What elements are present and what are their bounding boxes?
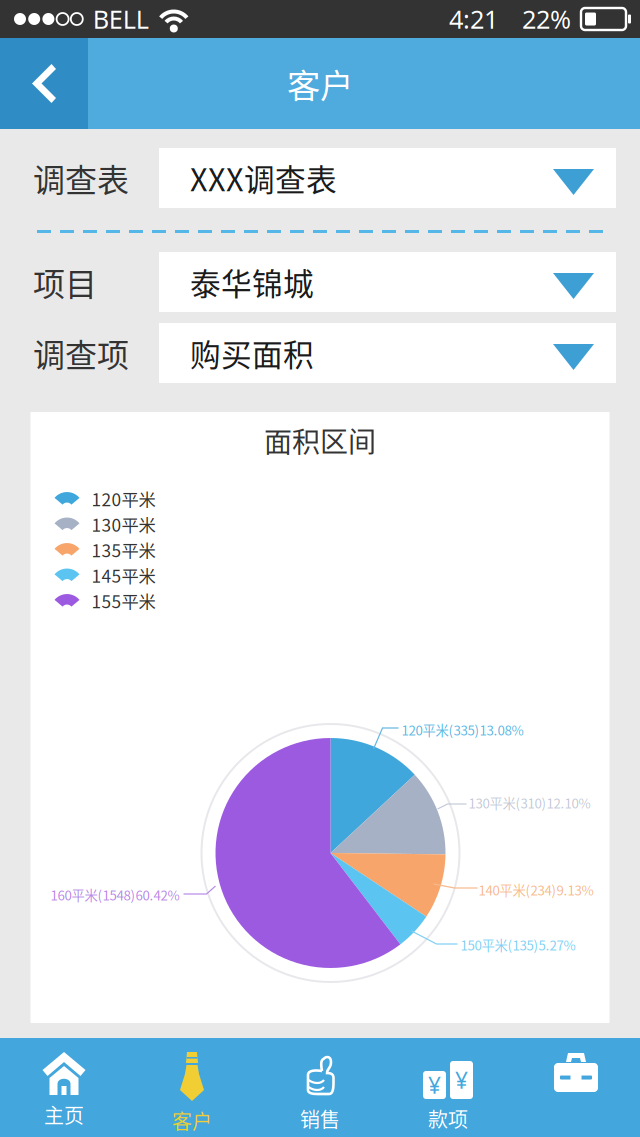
- staticText: 155平米: [91, 588, 155, 613]
- staticText: 客户: [172, 1106, 212, 1135]
- staticText: 销售: [300, 1104, 340, 1133]
- button[interactable]: XXX调查表: [159, 148, 616, 208]
- button[interactable]: 泰华锦城: [159, 252, 616, 312]
- staticText: 145平米: [91, 563, 155, 588]
- staticText: 140平米(234)9.13%: [478, 880, 593, 899]
- staticText: 130平米: [91, 512, 155, 537]
- button[interactable]: 购买面积: [159, 323, 616, 383]
- staticText: 泰华锦城: [190, 260, 314, 304]
- button[interactable]: 销售: [256, 1038, 384, 1137]
- button[interactable]: 主页: [0, 1038, 128, 1137]
- button[interactable]: 客户: [128, 1038, 256, 1137]
- staticText: 135平米: [91, 537, 155, 562]
- staticText: XXX调查表: [190, 156, 337, 200]
- staticText: 4:21: [449, 2, 498, 36]
- staticText: 调查项: [33, 330, 129, 376]
- staticText: 120平米(335)13.08%: [401, 720, 523, 739]
- staticText: 面积区间: [264, 420, 376, 460]
- staticText: 130平米(310)12.10%: [468, 793, 590, 812]
- staticText: 调查表: [33, 155, 129, 201]
- button[interactable]: 返回: [0, 38, 88, 129]
- staticText: 客户: [287, 59, 353, 108]
- staticText: BELL: [93, 2, 149, 36]
- staticText: 项目: [33, 259, 97, 305]
- staticText: 120平米: [91, 486, 155, 511]
- button[interactable]: [512, 1038, 640, 1137]
- staticText: 160平米(1548)60.42%: [50, 885, 179, 904]
- button[interactable]: ¥: [384, 1038, 512, 1137]
- staticText: 主页: [44, 1100, 84, 1129]
- staticText: 款项: [428, 1104, 468, 1133]
- staticText: ¥: [428, 1070, 441, 1100]
- staticText: 22%: [522, 2, 571, 36]
- staticText: 购买面积: [190, 331, 314, 375]
- staticText: ¥: [455, 1065, 468, 1095]
- staticText: 150平米(135)5.27%: [460, 935, 575, 954]
